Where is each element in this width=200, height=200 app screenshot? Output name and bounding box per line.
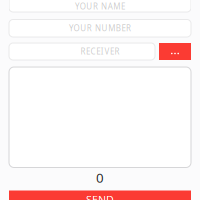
staticText: YOUR NUMBER [69, 23, 131, 34]
staticText: 0 [96, 168, 104, 187]
staticText: RECEIVER [80, 46, 120, 57]
staticText: SEND [86, 192, 114, 200]
button[interactable]: SEND [9, 190, 191, 200]
button[interactable]: Pick receiver from contacts [159, 43, 191, 60]
staticText: YOUR NAME [75, 1, 125, 12]
